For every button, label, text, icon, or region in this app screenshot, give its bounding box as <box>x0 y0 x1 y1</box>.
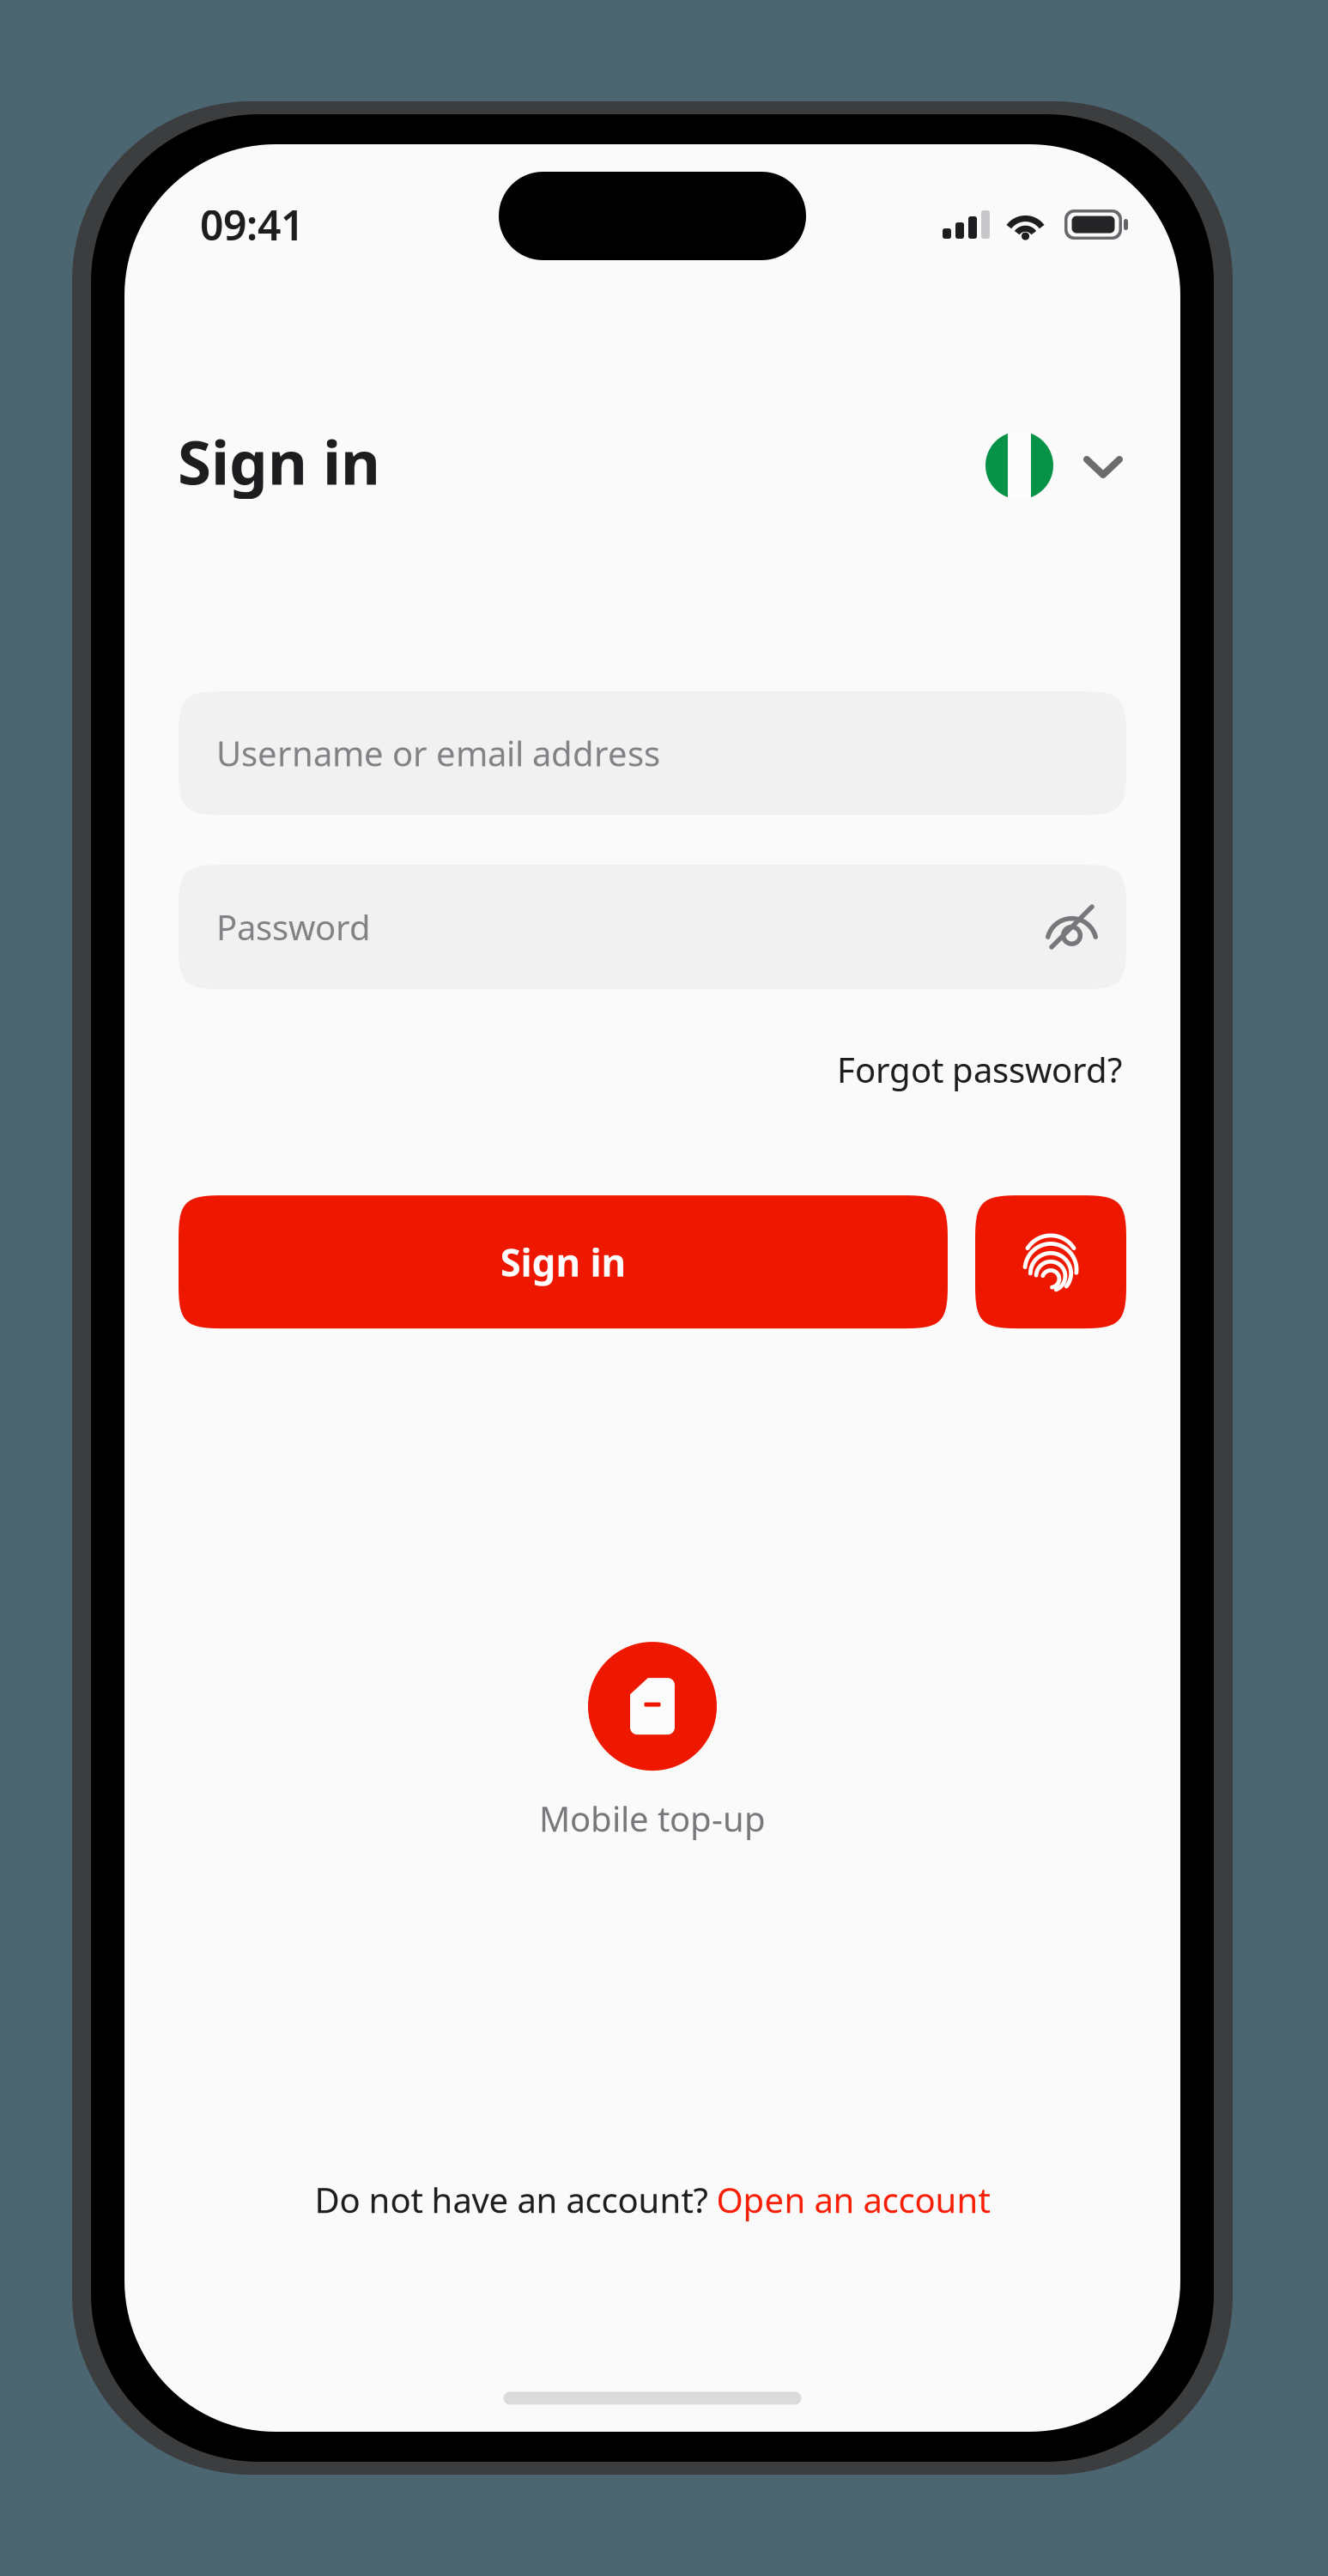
staticText: Password <box>216 904 371 950</box>
button[interactable]: Sign in <box>179 1195 948 1328</box>
staticText: 09:41 <box>200 197 304 252</box>
staticText: Open an account <box>716 2177 990 2222</box>
button[interactable]: Do not have an account? <box>315 2163 990 2236</box>
button[interactable]: Select country <box>985 412 1123 510</box>
staticText: Sign in <box>178 421 380 501</box>
staticText: Sign in <box>500 1237 626 1287</box>
button[interactable]: Password <box>179 865 1126 989</box>
staticText: Do not have an account? <box>315 2177 708 2222</box>
button[interactable]: Sign in with fingerprint <box>975 1195 1126 1328</box>
staticText: Mobile top-up <box>539 1796 766 1841</box>
button[interactable]: Username or email address <box>179 691 1126 815</box>
button[interactable]: Forgot password? <box>837 1035 1122 1104</box>
button[interactable]: Mobile top-up <box>539 1642 766 1841</box>
staticText: Forgot password? <box>837 1047 1122 1092</box>
staticText: Username or email address <box>216 730 660 776</box>
